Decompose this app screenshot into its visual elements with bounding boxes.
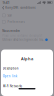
staticText: Scan: [7, 14, 12, 17]
staticText: Nous rendre: [2, 29, 20, 33]
button[interactable]: Open link: [3, 70, 17, 78]
staticText: Open link: [3, 74, 17, 78]
staticText: Alpha: [21, 56, 33, 61]
staticText: Wi-Fi Networks: [3, 84, 22, 88]
staticText: Utiliser allez les lignes de transfert r…: [2, 38, 45, 41]
staticText: Kony DW: conditions: [5, 6, 35, 9]
button[interactable]: Back: [2, 6, 4, 10]
staticText: Preferences: [7, 20, 24, 24]
staticText: 9:41: [3, 0, 10, 5]
staticText: Description: [3, 67, 19, 70]
button[interactable]: Preferences: [0, 19, 54, 25]
